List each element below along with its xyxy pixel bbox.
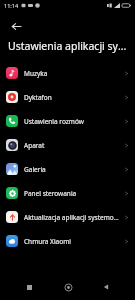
button[interactable]: Ustawienia rozmów xyxy=(0,109,135,133)
button[interactable]: Recents xyxy=(19,277,39,297)
button[interactable]: Back xyxy=(96,277,116,297)
button[interactable]: Dyktafon xyxy=(0,85,135,109)
staticText: Panel sterowania xyxy=(24,189,121,198)
staticText: Dyktafon xyxy=(24,93,121,102)
staticText: Aktualizacja aplikacji systemowych xyxy=(24,213,121,222)
staticText: Galeria xyxy=(24,165,121,174)
staticText: 11:14 xyxy=(4,2,19,9)
button[interactable]: Aktualizacja aplikacji systemowych xyxy=(0,205,135,229)
staticText: Chmura Xiaomi xyxy=(24,237,121,246)
staticText: Aparat xyxy=(24,141,121,150)
button[interactable]: Aparat xyxy=(0,133,135,157)
staticText: Muzyka xyxy=(24,69,121,78)
button[interactable]: Muzyka xyxy=(0,61,135,85)
button[interactable]: Back xyxy=(5,15,27,37)
button[interactable]: Galeria xyxy=(0,157,135,181)
button[interactable]: Panel sterowania xyxy=(0,181,135,205)
staticText: Ustawienia aplikacji systemowych xyxy=(8,39,129,53)
button[interactable]: Chmura Xiaomi xyxy=(0,229,135,253)
staticText: Ustawienia rozmów xyxy=(24,117,121,126)
button[interactable]: Home xyxy=(58,277,78,297)
